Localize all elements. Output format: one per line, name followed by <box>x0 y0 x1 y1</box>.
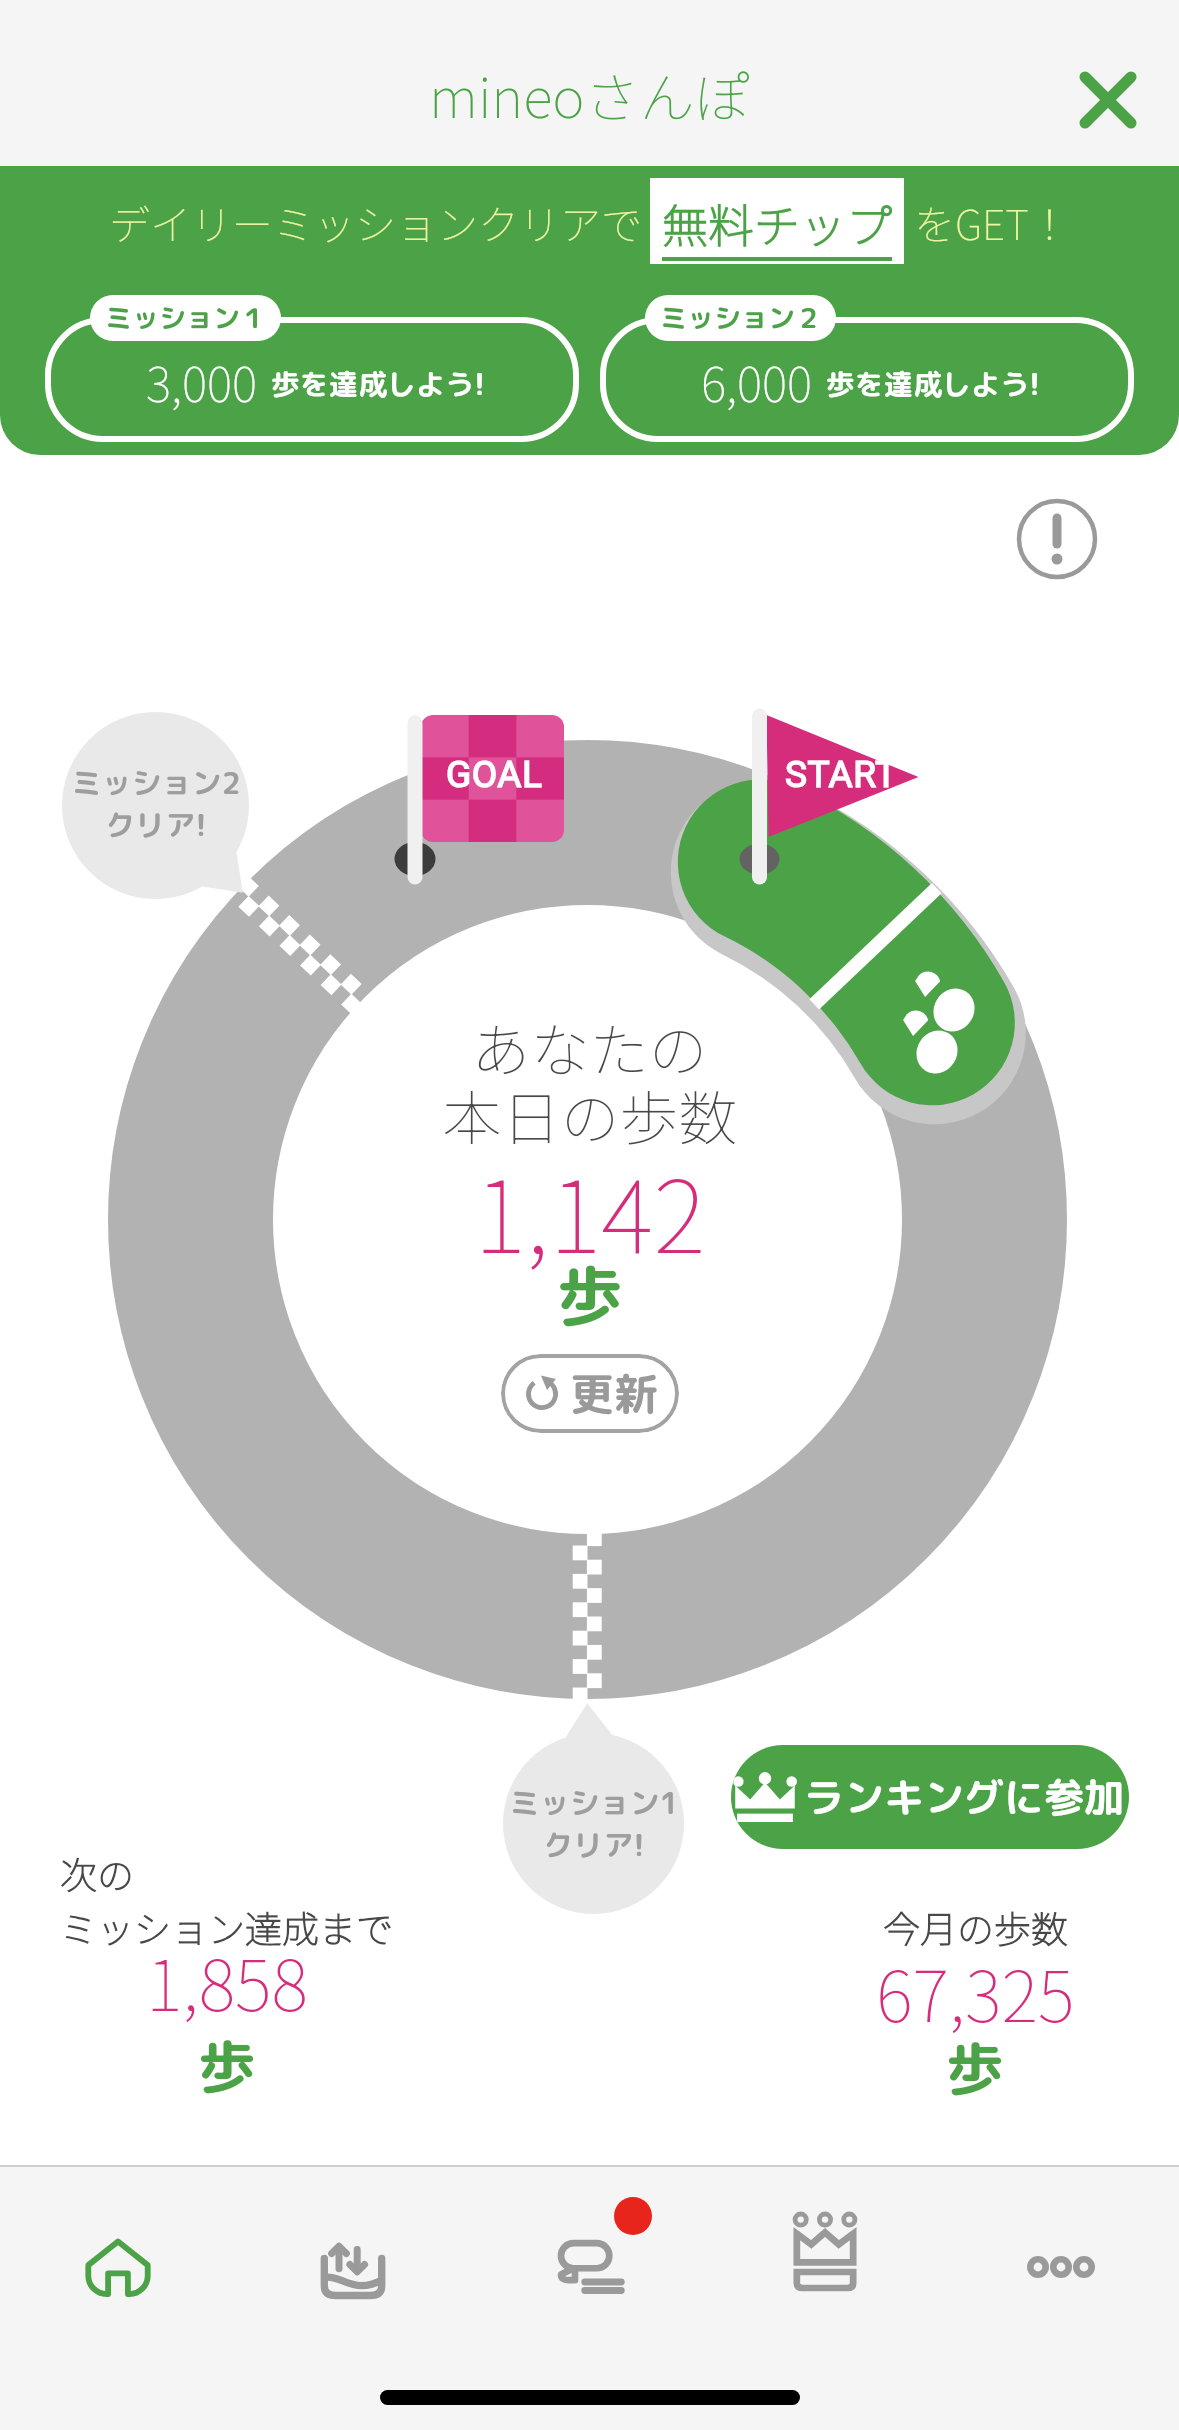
staticText: ミッション２ <box>660 299 822 337</box>
button[interactable]: Close <box>1063 55 1153 145</box>
staticText: 更新 <box>570 1363 658 1424</box>
staticText: 歩 <box>198 2026 257 2107</box>
staticText: 歩 <box>946 2028 1005 2109</box>
staticText: 次の <box>60 1846 134 1900</box>
button[interactable]: Community <box>471 2167 707 2335</box>
staticText: あなたの <box>471 1004 708 1089</box>
button[interactable]: Information <box>1016 498 1098 580</box>
staticText: 6,000 <box>701 346 813 416</box>
staticText: をGET！ <box>914 192 1070 251</box>
staticText: ミッション1 <box>509 1782 679 1824</box>
staticText: ミッション達成まで <box>60 1900 393 1954</box>
staticText: ランキングに参加 <box>804 1769 1126 1825</box>
staticText: クリア! <box>543 1824 645 1866</box>
button[interactable]: More <box>943 2167 1179 2335</box>
staticText: 1,858 <box>146 1930 309 2031</box>
staticText: ミッション2 <box>71 762 241 804</box>
staticText: mineoさんぽ <box>429 54 750 134</box>
staticText: クリア! <box>105 804 207 846</box>
button[interactable]: ランキングに参加 <box>731 1745 1129 1849</box>
staticText: 3,000 <box>146 346 258 416</box>
staticText: デイリーミッションクリアで <box>109 192 642 251</box>
button[interactable]: Ranking <box>707 2167 943 2335</box>
staticText: 無料チップ <box>662 190 892 257</box>
button[interactable]: Home <box>0 2167 235 2335</box>
staticText: 本日の歩数 <box>442 1072 738 1157</box>
staticText: START <box>785 753 898 796</box>
button[interactable]: 更新 <box>501 1354 679 1433</box>
staticText: 歩を達成しよう! <box>826 364 1041 404</box>
staticText: 1,142 <box>474 1137 706 1282</box>
staticText: 今月の歩数 <box>883 1900 1068 1954</box>
button[interactable]: Usage <box>235 2167 471 2335</box>
staticText: ミッション１ <box>105 299 267 337</box>
button[interactable] <box>45 317 579 442</box>
staticText: 歩を達成しよう! <box>271 364 486 404</box>
button[interactable] <box>600 317 1134 442</box>
staticText: 67,325 <box>876 1941 1075 2042</box>
staticText: 歩 <box>557 1249 623 1341</box>
staticText: GOAL <box>446 753 543 796</box>
